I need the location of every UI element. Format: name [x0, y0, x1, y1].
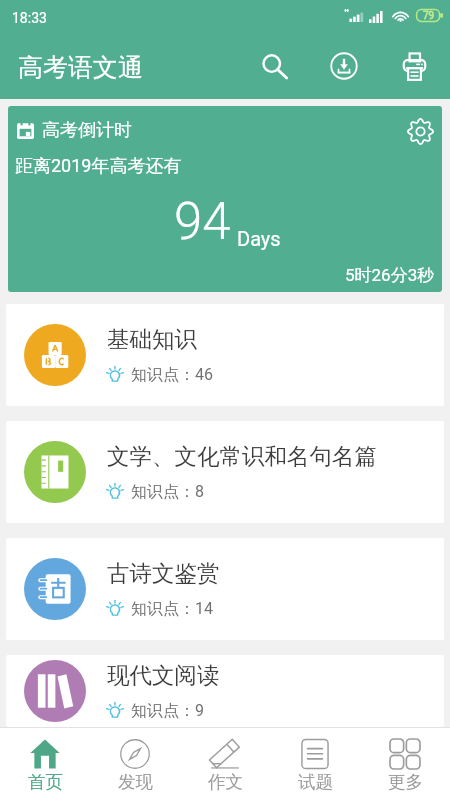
button[interactable]: 试题 — [270, 728, 360, 800]
staticText: 知识点：14 — [131, 599, 213, 619]
button[interactable]: 搜索 — [246, 35, 302, 99]
staticText: 古诗文鉴赏 — [107, 559, 220, 587]
staticText: 距离2019年高考还有 — [15, 155, 182, 178]
button[interactable]: 发现 — [90, 728, 180, 800]
button[interactable]: 文学、文化常识和名句名篇 — [6, 421, 444, 523]
button[interactable]: 作文 — [180, 728, 270, 800]
staticText: 作文 — [208, 771, 243, 793]
staticText: 79 — [423, 10, 435, 22]
button[interactable]: 高考倒计时 — [8, 106, 442, 292]
staticText: 基础知识 — [107, 325, 197, 353]
button[interactable]: 古诗文鉴赏 — [6, 538, 444, 640]
button[interactable]: 打印 — [386, 35, 442, 99]
staticText: 首页 — [28, 771, 63, 793]
button[interactable]: 设置 — [400, 111, 440, 151]
button[interactable]: 下载 — [316, 35, 372, 99]
button[interactable]: 现代文阅读 — [6, 655, 444, 727]
staticText: 5时26分3秒 — [345, 265, 435, 286]
staticText: 高考语文通 — [18, 52, 143, 83]
staticText: 94 — [174, 192, 231, 252]
staticText: 知识点：8 — [131, 482, 204, 502]
staticText: 试题 — [298, 771, 333, 793]
staticText: 文学、文化常识和名句名篇 — [107, 442, 377, 470]
staticText: Days — [237, 227, 281, 250]
button[interactable]: 基础知识 — [6, 304, 444, 406]
staticText: 高考倒计时 — [42, 119, 132, 142]
button[interactable]: 首页 — [0, 728, 90, 800]
staticText: 发现 — [118, 771, 153, 793]
staticText: 知识点：9 — [131, 701, 204, 721]
staticText: 更多 — [388, 771, 423, 793]
staticText: 18:33 — [12, 10, 47, 26]
staticText: 知识点：46 — [131, 365, 213, 385]
staticText: 现代文阅读 — [107, 661, 220, 689]
button[interactable]: 更多 — [360, 728, 450, 800]
